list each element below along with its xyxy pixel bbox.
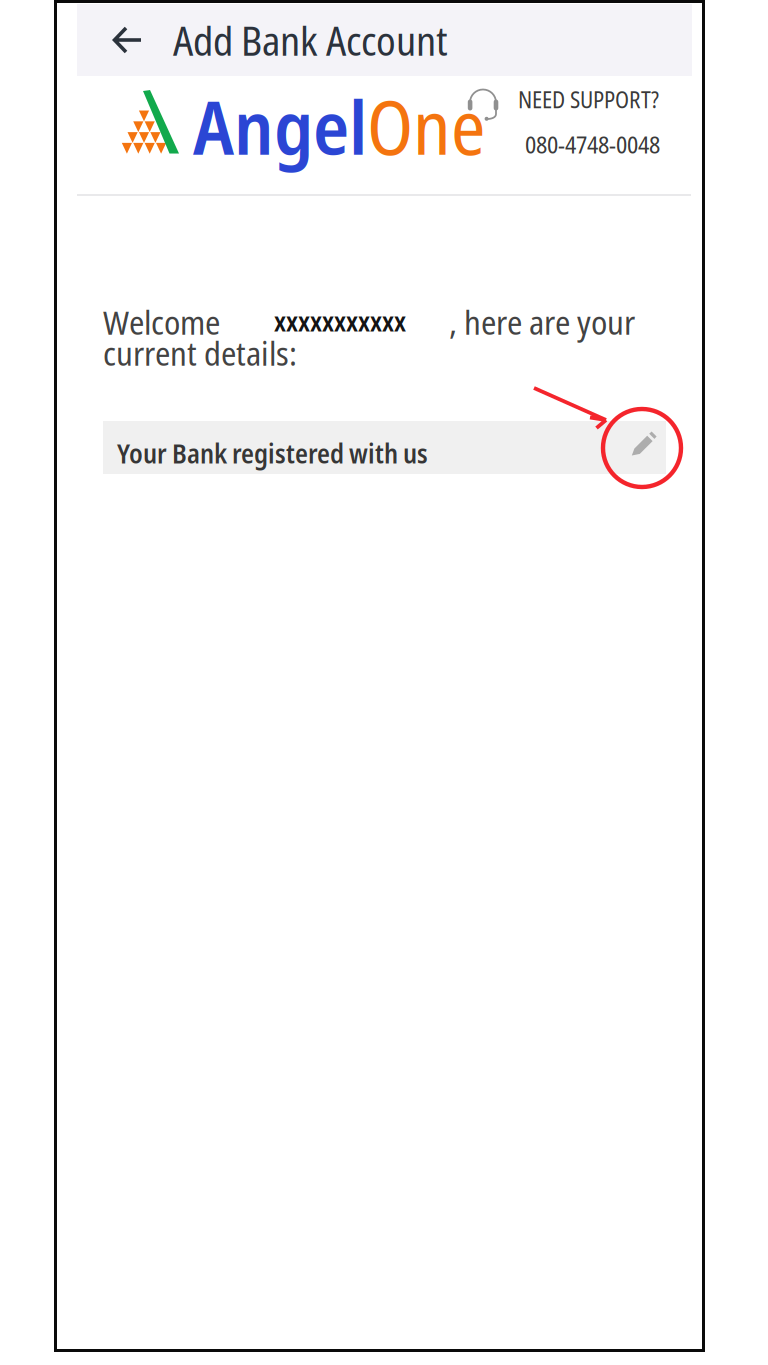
staticText: , here are your xyxy=(449,299,635,344)
staticText: Add Bank Account xyxy=(173,13,448,67)
staticText: 080-4748-0048 xyxy=(525,128,660,161)
staticText: Welcome xyxy=(103,299,220,344)
staticText: Your Bank registered with us xyxy=(117,435,428,471)
staticText: current details: xyxy=(103,330,297,375)
staticText: NEED SUPPORT? xyxy=(518,84,659,115)
button[interactable]: Your Bank registered with us xyxy=(103,421,666,474)
button[interactable]: NEED SUPPORT? xyxy=(466,84,660,161)
staticText: One xyxy=(367,75,485,177)
button[interactable]: Edit bank account xyxy=(622,422,666,466)
button[interactable]: Back xyxy=(103,15,153,65)
staticText: xxxxxxxxxxx xyxy=(274,303,406,339)
staticText: Angel xyxy=(193,75,367,177)
